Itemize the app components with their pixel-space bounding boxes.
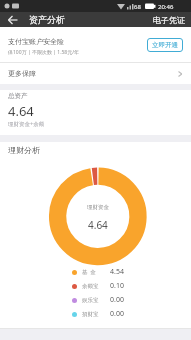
staticText: 招财宝 — [82, 311, 99, 318]
staticText: 20:46 — [158, 3, 174, 11]
staticText: 4.64 — [88, 218, 108, 232]
staticText: 总资产 — [8, 92, 28, 100]
staticText: 理财资金 — [87, 204, 109, 211]
staticText: 理财分析 — [8, 145, 40, 155]
staticText: 0.00 — [110, 295, 124, 305]
staticText: 支付宝账户安全险 — [8, 37, 64, 46]
button[interactable]: 支付宝账户安全险 — [0, 27, 191, 62]
staticText: 娱乐宝 — [82, 297, 99, 304]
staticText: 保100万 | 不限次数 | 1.58元/年 — [8, 49, 80, 56]
staticText: 0.10 — [110, 281, 124, 291]
staticText: 余额宝 — [82, 283, 99, 290]
staticText: 4.64 — [8, 102, 34, 120]
staticText: 基 金 — [82, 268, 96, 276]
staticText: 立即开通 — [152, 41, 178, 49]
staticText: 更多保障 — [8, 69, 36, 78]
staticText: 理财资金+余额 — [8, 120, 45, 128]
staticText: 电子凭证 — [153, 15, 185, 25]
button[interactable]: 电子凭证 — [153, 15, 185, 25]
staticText: 0.00 — [110, 309, 124, 319]
button[interactable] — [0, 12, 26, 27]
staticText: 4.54 — [110, 267, 124, 277]
button[interactable]: 更多保障 — [0, 63, 191, 84]
button[interactable]: 立即开通 — [147, 38, 183, 52]
staticText: 68 — [134, 3, 141, 11]
staticText: 资产分析 — [29, 14, 65, 25]
